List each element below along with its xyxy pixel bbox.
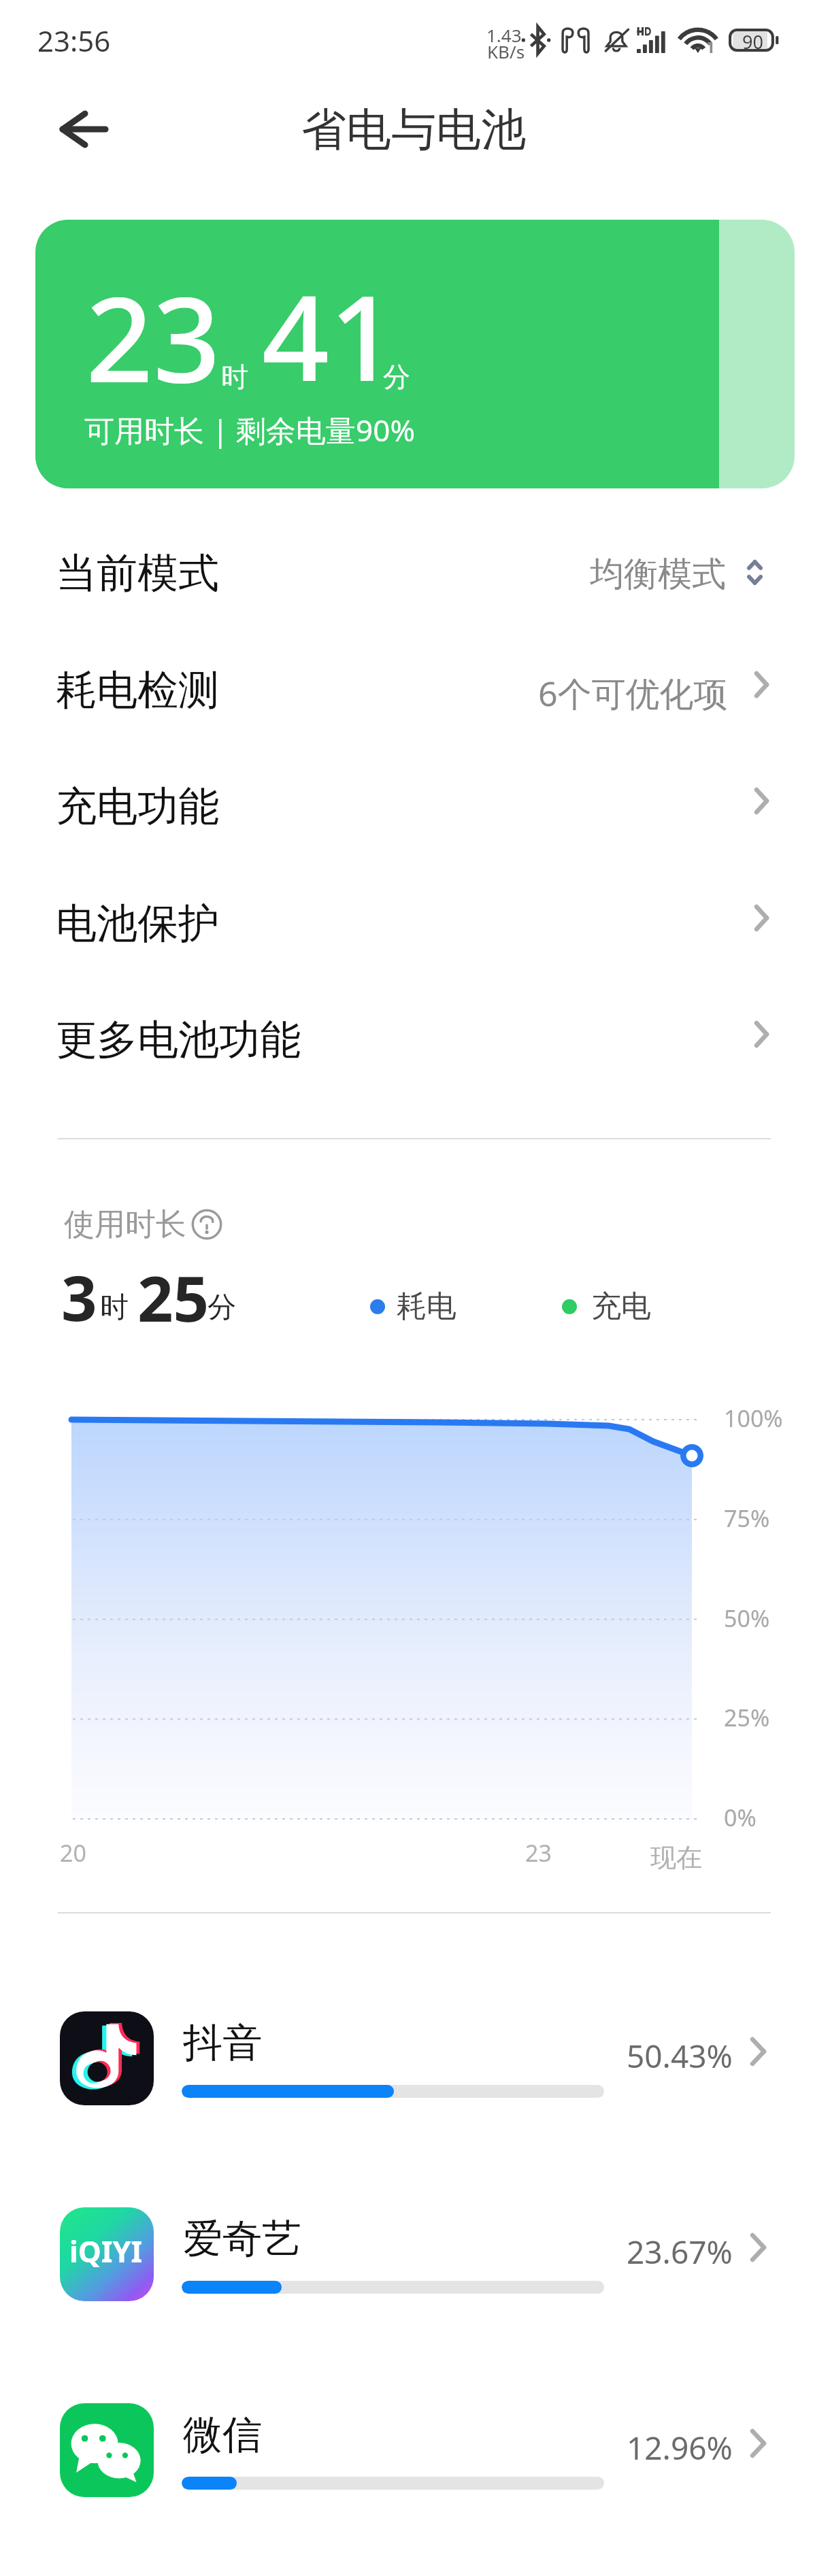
staticText: 当前模式 — [56, 548, 219, 599]
staticText: 均衡模式 — [590, 553, 726, 596]
staticText: 现在 — [650, 1841, 702, 1874]
staticText: iQIYI — [69, 2231, 143, 2271]
button[interactable] — [0, 748, 830, 864]
staticText: 12.96% — [627, 2426, 733, 2469]
button[interactable] — [35, 220, 795, 488]
staticText: 耗电检测 — [56, 665, 219, 716]
staticText: 更多电池功能 — [56, 1014, 301, 1066]
staticText: 时 — [221, 360, 248, 394]
button[interactable]: iQIYI — [0, 2191, 830, 2318]
button[interactable] — [0, 865, 830, 981]
staticText: 抖音 — [183, 2018, 262, 2068]
staticText: 充电 — [591, 1288, 651, 1325]
staticText: 微信 — [183, 2410, 262, 2460]
staticText: 50.43% — [627, 2035, 733, 2077]
staticText: 充电功能 — [56, 781, 219, 833]
staticText: 分 — [383, 360, 410, 394]
staticText: 6个可优化项 — [538, 670, 728, 716]
staticText: 使用时长 — [64, 1205, 186, 1244]
staticText: 分 — [207, 1290, 236, 1326]
button[interactable] — [0, 631, 830, 748]
staticText: 25% — [724, 1702, 770, 1733]
button[interactable]: 抖音 — [0, 1995, 830, 2122]
staticText: 耗电 — [397, 1288, 456, 1325]
staticText: 50% — [724, 1603, 770, 1634]
button[interactable]: 微信 — [0, 2387, 830, 2513]
staticText: KB/s — [487, 39, 525, 63]
staticText: 23 — [86, 256, 220, 417]
staticText: 电池保护 — [56, 898, 219, 950]
staticText: 1.43 — [486, 23, 522, 47]
staticText: 23:56 — [37, 21, 111, 60]
staticText: 20 — [60, 1837, 86, 1869]
button[interactable]: Back — [50, 95, 118, 163]
staticText: 23.67% — [627, 2230, 733, 2273]
staticText: 爱奇艺 — [183, 2214, 301, 2264]
staticText: 可用时长 | 剩余电量90% — [84, 409, 416, 450]
button[interactable] — [0, 514, 830, 631]
button[interactable] — [0, 981, 830, 1097]
staticText: 75% — [724, 1503, 770, 1534]
staticText: 25 — [137, 1255, 210, 1340]
staticText: 23 — [525, 1837, 552, 1869]
staticText: 100% — [724, 1403, 783, 1434]
staticText: 41 — [262, 255, 397, 416]
staticText: 0% — [724, 1802, 757, 1833]
staticText: 90 — [742, 29, 763, 54]
staticText: 时 — [100, 1290, 129, 1326]
staticText: 3 — [61, 1254, 97, 1339]
staticText: 省电与电池 — [301, 101, 526, 158]
